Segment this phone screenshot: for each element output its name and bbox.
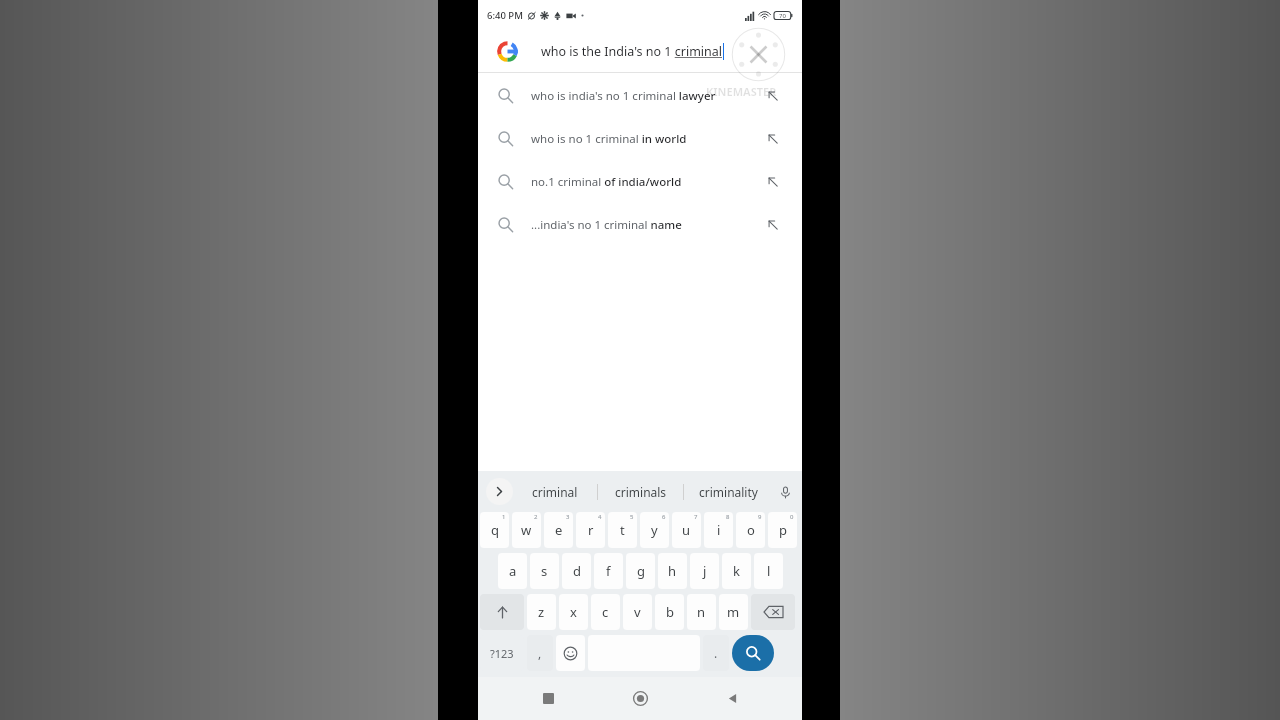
button[interactable]: h <box>658 553 687 589</box>
button[interactable]: Search <box>732 635 774 671</box>
staticText: criminals <box>615 484 667 500</box>
staticText: 70 <box>779 12 786 20</box>
staticText: t <box>620 521 625 539</box>
button[interactable]: u <box>672 512 701 548</box>
button[interactable]: Expand suggestions <box>486 478 513 505</box>
button[interactable]: j <box>690 553 719 589</box>
staticText: criminality <box>699 484 758 500</box>
button[interactable]: c <box>591 594 620 630</box>
button[interactable]: d <box>562 553 591 589</box>
button[interactable]: i <box>704 512 733 548</box>
button[interactable]: . <box>703 635 729 671</box>
staticText: 7 <box>694 513 698 521</box>
staticText: x <box>570 603 577 621</box>
button[interactable]: r <box>576 512 605 548</box>
staticText: , <box>538 645 542 661</box>
button[interactable]: v <box>623 594 652 630</box>
staticText: c <box>602 603 609 621</box>
staticText: who is india's no 1 criminal lawyer <box>531 88 716 104</box>
staticText: v <box>634 603 641 621</box>
staticText: o <box>747 521 755 539</box>
staticText: e <box>555 521 563 539</box>
staticText: q <box>491 521 499 539</box>
button[interactable]: who is the India's no 1 criminal <box>478 31 802 72</box>
button[interactable]: Back <box>710 677 754 720</box>
button[interactable]: a <box>498 553 527 589</box>
staticText: k <box>733 562 740 580</box>
staticText: 8 <box>726 513 730 521</box>
button[interactable]: z <box>527 594 556 630</box>
button[interactable]: x <box>559 594 588 630</box>
button[interactable]: q <box>480 512 509 548</box>
button[interactable]: ?123 <box>480 635 524 671</box>
button[interactable]: , <box>527 635 553 671</box>
button[interactable]: who is india's no 1 criminal lawyer <box>478 74 802 117</box>
staticText: s <box>541 562 548 580</box>
button[interactable] <box>751 594 795 630</box>
button[interactable]: m <box>719 594 748 630</box>
staticText: 5 <box>630 513 634 521</box>
staticText: f <box>606 562 611 580</box>
staticText: h <box>668 562 677 580</box>
staticText: m <box>727 603 740 621</box>
staticText: d <box>573 562 581 580</box>
staticText: 9 <box>758 513 762 521</box>
button[interactable]: y <box>640 512 669 548</box>
button[interactable]: e <box>544 512 573 548</box>
button[interactable]: o <box>736 512 765 548</box>
button[interactable]: Recent apps <box>526 677 570 720</box>
button[interactable]: g <box>626 553 655 589</box>
button[interactable]: who is no 1 criminal in world <box>478 117 802 160</box>
staticText: ?123 <box>490 646 514 661</box>
button[interactable]: w <box>512 512 541 548</box>
button[interactable]: Voice input <box>772 479 798 505</box>
staticText: who is no 1 criminal in world <box>531 131 687 147</box>
button[interactable]: criminality <box>684 471 772 512</box>
button[interactable]: k <box>722 553 751 589</box>
staticText: 2 <box>534 513 538 521</box>
staticText: p <box>779 521 787 539</box>
staticText: r <box>588 521 594 539</box>
staticText: 6 <box>662 513 666 521</box>
button[interactable]: p <box>768 512 797 548</box>
button[interactable]: criminal <box>513 471 597 512</box>
button[interactable]: Home <box>618 677 662 720</box>
staticText: ...india's no 1 criminal name <box>531 217 682 233</box>
button[interactable]: t <box>608 512 637 548</box>
button[interactable]: f <box>594 553 623 589</box>
staticText: j <box>703 562 707 580</box>
button[interactable]: s <box>530 553 559 589</box>
staticText: l <box>767 562 771 580</box>
staticText: . <box>714 645 718 661</box>
staticText: criminal <box>532 484 578 500</box>
staticText: 4 <box>598 513 602 521</box>
button[interactable]: l <box>754 553 783 589</box>
staticText: KINEMASTER <box>706 84 777 99</box>
staticText: who is the India's no 1 criminal <box>541 43 723 60</box>
staticText: y <box>651 521 658 539</box>
staticText: z <box>538 603 545 621</box>
staticText: 3 <box>566 513 570 521</box>
staticText: 6:40 PM <box>487 9 523 22</box>
button[interactable] <box>480 594 524 630</box>
staticText: w <box>521 521 532 539</box>
staticText: g <box>637 562 645 580</box>
staticText: no.1 criminal of india/world <box>531 174 682 190</box>
button[interactable] <box>556 635 585 671</box>
staticText: 0 <box>790 513 794 521</box>
staticText: 1 <box>502 513 506 521</box>
button[interactable]: ...india's no 1 criminal name <box>478 203 802 246</box>
staticText: b <box>666 603 674 621</box>
staticText: a <box>509 562 517 580</box>
button[interactable]: n <box>687 594 716 630</box>
staticText: u <box>682 521 691 539</box>
staticText: i <box>717 521 721 539</box>
staticText: n <box>697 603 706 621</box>
button[interactable]: b <box>655 594 684 630</box>
button[interactable]: no.1 criminal of india/world <box>478 160 802 203</box>
button[interactable]: criminals <box>598 471 683 512</box>
